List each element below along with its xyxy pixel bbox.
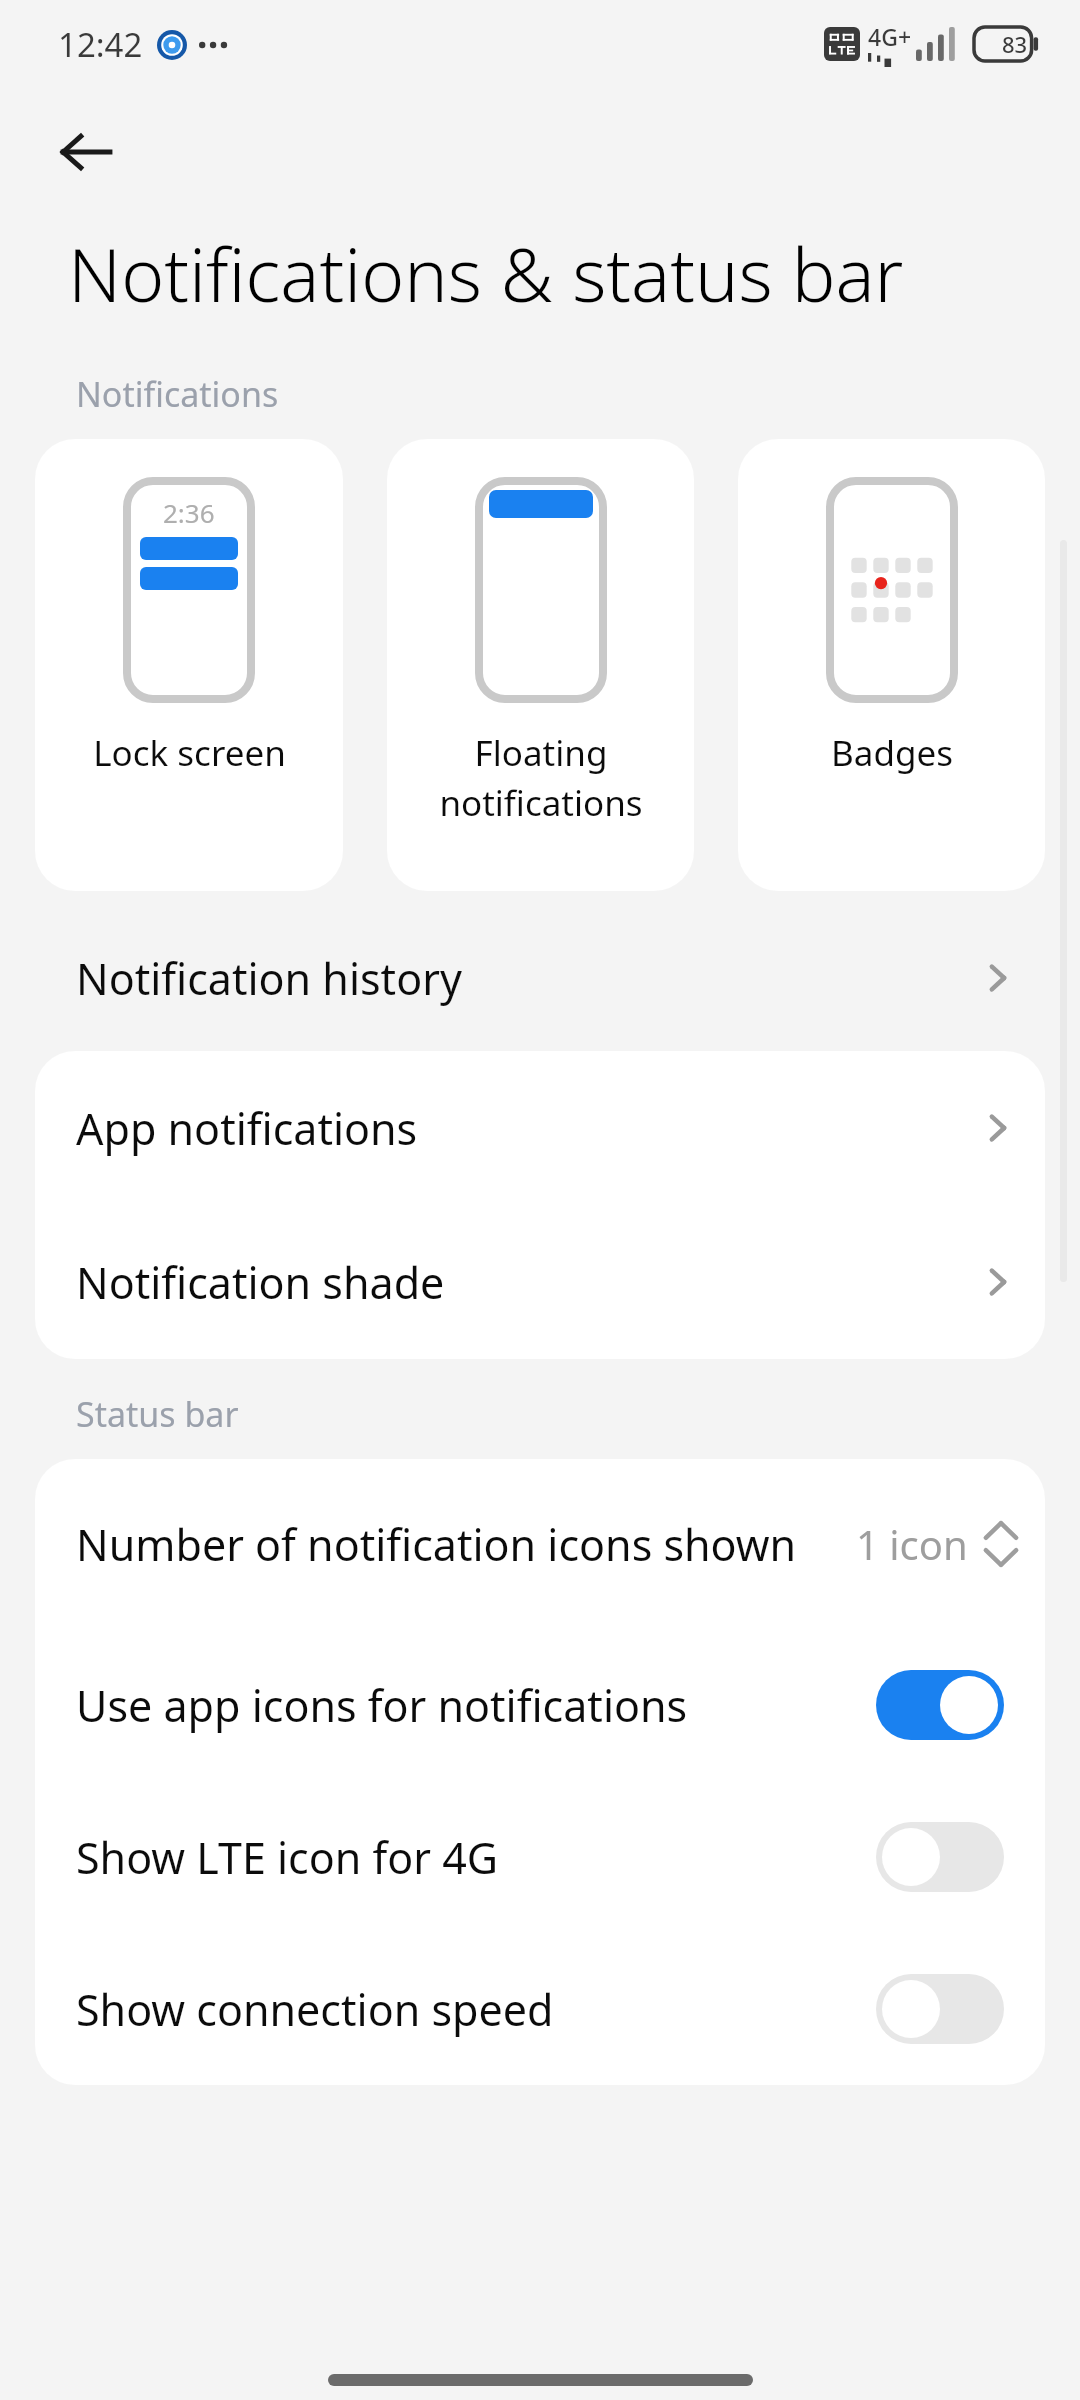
staticText: Floating notifications — [439, 729, 643, 826]
button[interactable]: App notifications — [35, 1051, 1045, 1205]
staticText: 83 — [1002, 29, 1028, 59]
staticText: Notification history — [76, 949, 976, 1008]
staticText: App notifications — [76, 1099, 976, 1158]
button[interactable]: Notification shade — [35, 1205, 1045, 1359]
staticText: 1 icon — [856, 1517, 968, 1571]
staticText: Notification shade — [76, 1253, 976, 1312]
button[interactable]: Show LTE icon for 4G — [35, 1781, 1045, 1933]
staticText: Show connection speed — [76, 1980, 856, 2039]
button[interactable]: Badges — [738, 439, 1045, 891]
button[interactable]: 2:36 — [35, 439, 343, 891]
staticText: Status bar — [76, 1391, 239, 1437]
button[interactable]: Number of notification icons shown — [35, 1459, 1045, 1629]
button[interactable]: Use app icons for notifications — [35, 1629, 1045, 1781]
staticText: Lock screen — [93, 729, 286, 777]
staticText: Show LTE icon for 4G — [76, 1828, 856, 1887]
button[interactable]: Notification history — [0, 919, 1080, 1037]
staticText: 4G+ — [868, 21, 912, 52]
staticText: 12:42 — [58, 22, 143, 67]
staticText: Number of notification icons shown — [76, 1515, 832, 1574]
button[interactable]: Show connection speed — [35, 1933, 1045, 2085]
button[interactable]: Back — [40, 106, 132, 198]
staticText: Notifications & status bar — [68, 224, 904, 323]
staticText: 2:36 — [163, 495, 215, 530]
staticText: Badges — [831, 729, 953, 777]
staticText: Use app icons for notifications — [76, 1676, 856, 1735]
staticText: Notifications — [76, 371, 279, 417]
button[interactable]: Floating notifications — [387, 439, 694, 891]
